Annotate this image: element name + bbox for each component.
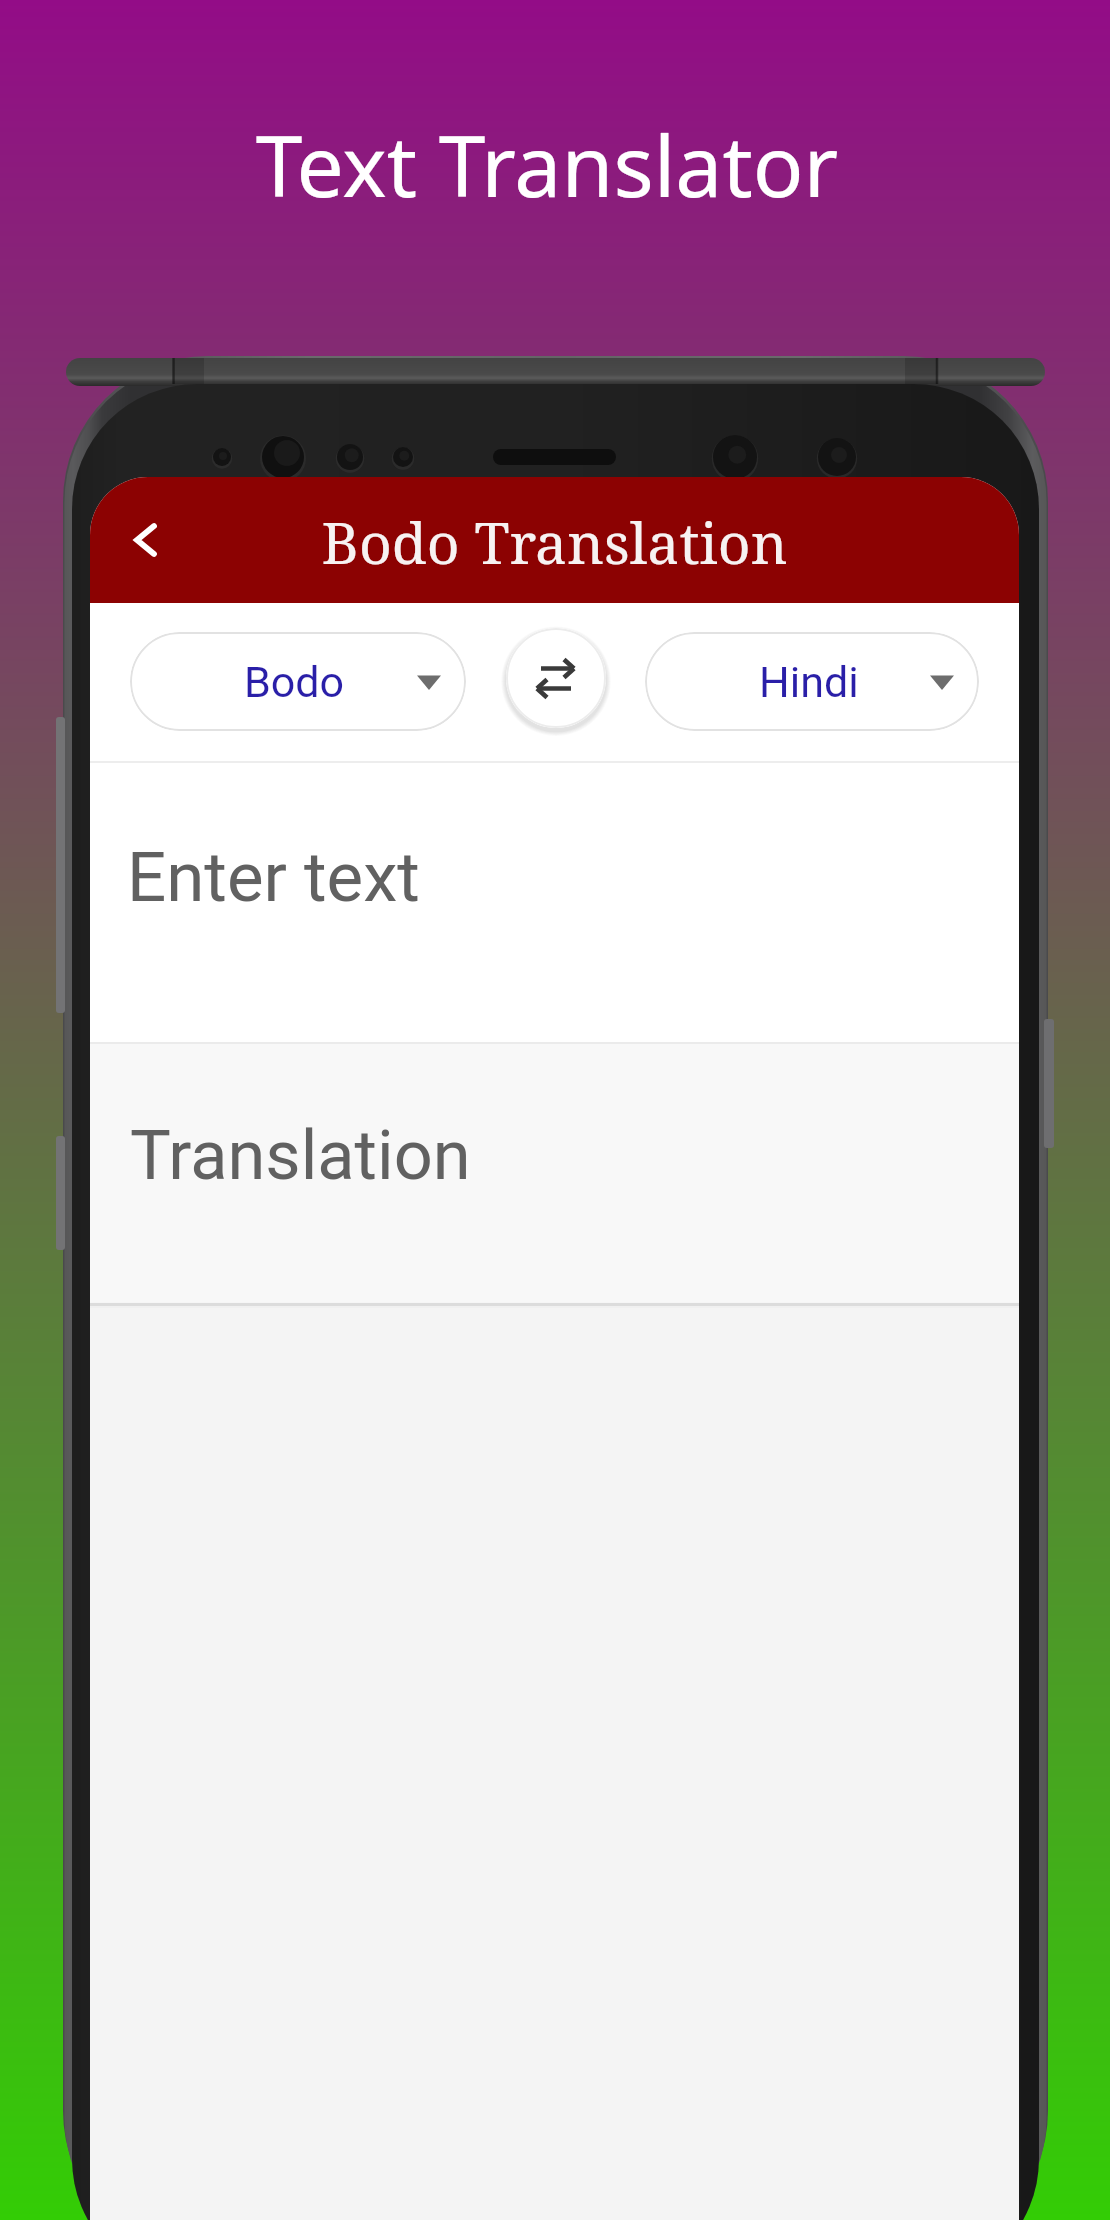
- button[interactable]: Enter text: [90, 763, 1019, 1042]
- button[interactable]: Bodo: [130, 632, 466, 731]
- button[interactable]: Back: [90, 492, 186, 588]
- staticText: Bodo: [244, 657, 345, 707]
- button[interactable]: Swap languages: [506, 628, 606, 728]
- button[interactable]: Hindi: [645, 632, 979, 731]
- staticText: Bodo Translation: [90, 503, 1019, 581]
- staticText: Text Translator: [0, 107, 1102, 221]
- staticText: Hindi: [759, 657, 859, 707]
- staticText: Enter text: [127, 837, 420, 918]
- button[interactable]: Translation: [90, 1044, 1019, 1302]
- staticText: Translation: [130, 1115, 471, 1195]
